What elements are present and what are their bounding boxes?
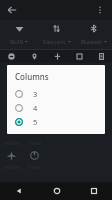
staticText: Airplane bbox=[3, 164, 21, 170]
button[interactable]: More options bbox=[92, 2, 108, 18]
staticText: 4 bbox=[33, 103, 38, 113]
button[interactable]: Bluetooth bbox=[75, 20, 112, 36]
button[interactable]: Mobile data bbox=[38, 20, 75, 36]
button[interactable]: Airplane mode bbox=[0, 147, 23, 163]
button[interactable]: Back bbox=[4, 2, 20, 18]
button[interactable]: Power bbox=[23, 147, 45, 163]
button[interactable]: Remove bbox=[0, 50, 23, 63]
button[interactable]: Data conn. bbox=[38, 36, 75, 47]
staticText: WLAN bbox=[10, 39, 23, 45]
button[interactable]: Home bbox=[38, 182, 75, 200]
button[interactable]: Wi-Fi bbox=[0, 20, 38, 36]
button[interactable]: Bluetooth bbox=[75, 36, 112, 47]
button[interactable]: Crop bbox=[68, 50, 90, 63]
staticText: Power bbox=[27, 164, 41, 170]
button[interactable]: Recents bbox=[75, 182, 112, 200]
staticText: Columns bbox=[15, 71, 49, 82]
button[interactable]: 5 bbox=[7, 115, 105, 129]
button[interactable]: 3 bbox=[7, 87, 105, 101]
staticText: 3 bbox=[33, 89, 38, 99]
button[interactable]: Location bbox=[23, 50, 46, 63]
button[interactable]: Back bbox=[0, 182, 38, 200]
staticText: Airplane bbox=[3, 140, 21, 146]
staticText: 5 bbox=[33, 117, 38, 127]
button[interactable]: Add bbox=[46, 50, 68, 63]
button[interactable]: 4 bbox=[7, 101, 105, 115]
staticText: Data conn. bbox=[43, 39, 66, 45]
staticText: Bluetooth bbox=[81, 39, 102, 45]
button[interactable]: List bbox=[90, 50, 112, 63]
button[interactable]: WLAN bbox=[0, 36, 38, 47]
staticText: Power bbox=[28, 140, 42, 146]
